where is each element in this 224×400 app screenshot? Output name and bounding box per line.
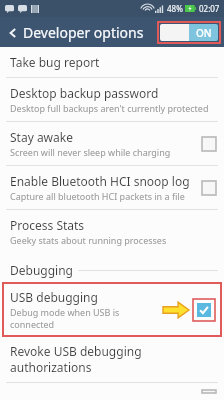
staticText: Take bug report [10, 54, 100, 70]
staticText: USB debugging [10, 289, 98, 305]
staticText: Desktop full backups aren't currently pr… [10, 102, 209, 114]
button[interactable]: USB debugging enabled [197, 303, 211, 317]
staticText: Capture all bluetooth HCI packets in a f… [10, 190, 185, 202]
button[interactable]: Desktop backup password [0, 78, 224, 121]
button[interactable]: Enable Bluetooth HCI snoop log [0, 166, 224, 209]
staticText: Stay awake [10, 129, 73, 145]
staticText: ON [196, 26, 212, 40]
staticText: Developer options [23, 23, 144, 42]
staticText: Enable Bluetooth HCI snoop log [10, 173, 190, 189]
staticText: 48% [167, 3, 183, 14]
staticText: Debug mode when USB is connected [10, 306, 163, 330]
staticText: Screen will never sleep while charging [10, 146, 171, 158]
staticText: Debugging [10, 262, 73, 278]
button[interactable]: Back [4, 24, 22, 42]
staticText: Process Stats [10, 217, 85, 233]
staticText: Revoke USB debugging authorizations [10, 343, 216, 375]
staticText: Desktop backup password [10, 85, 159, 101]
button[interactable]: Power menu bug reports [0, 383, 224, 400]
staticText: Geeky stats about running processes [10, 234, 167, 246]
button[interactable]: Process Stats [0, 210, 224, 253]
button[interactable]: Developer options on [160, 24, 218, 41]
button[interactable]: USB debugging [3, 283, 221, 336]
button[interactable]: Stay awake [0, 122, 224, 165]
staticText: 02:07 [199, 3, 220, 14]
button[interactable]: Revoke USB debugging authorizations [0, 336, 224, 382]
button[interactable]: Take bug report [0, 47, 224, 77]
